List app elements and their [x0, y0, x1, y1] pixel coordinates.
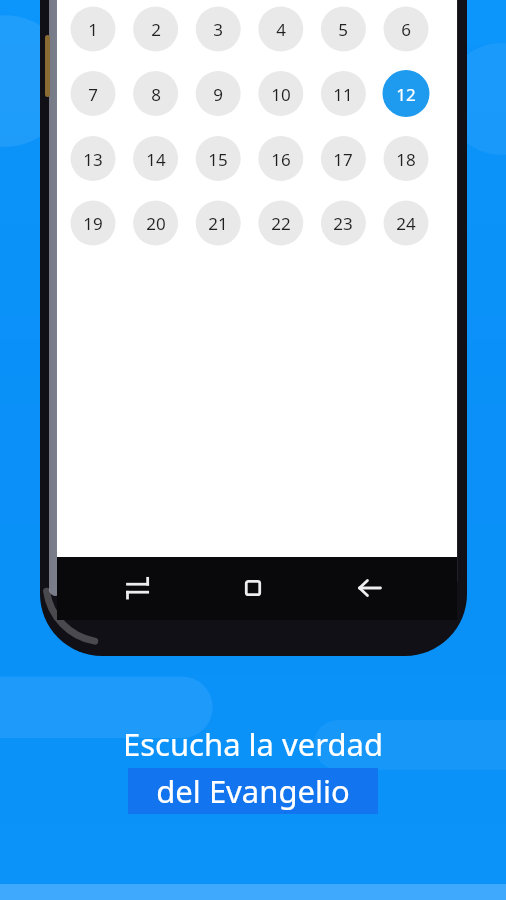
button[interactable]: 6 — [383, 6, 429, 52]
button[interactable]: 18 — [383, 136, 429, 182]
button[interactable]: 1 — [70, 6, 116, 52]
button[interactable]: Recents — [117, 567, 159, 609]
button[interactable]: Back — [349, 567, 391, 609]
button[interactable]: 21 — [195, 200, 241, 246]
button[interactable]: 7 — [70, 71, 116, 117]
staticText: 8 — [151, 83, 161, 106]
staticText: 24 — [396, 212, 416, 235]
button[interactable]: 15 — [195, 136, 241, 182]
button[interactable]: 2 — [133, 6, 179, 52]
staticText: 14 — [146, 148, 166, 171]
button[interactable]: 24 — [383, 200, 429, 246]
staticText: 9 — [213, 83, 223, 106]
staticText: del Evangelio — [156, 770, 350, 812]
button[interactable]: 17 — [320, 136, 366, 182]
button[interactable]: 4 — [258, 6, 304, 52]
staticText: 7 — [88, 83, 98, 106]
button[interactable]: 22 — [258, 200, 304, 246]
staticText: 3 — [213, 18, 223, 41]
button[interactable]: 20 — [133, 200, 179, 246]
staticText: 18 — [396, 148, 416, 171]
button[interactable]: 9 — [195, 71, 241, 117]
button[interactable]: 11 — [320, 71, 366, 117]
button[interactable]: 14 — [133, 136, 179, 182]
staticText: 11 — [333, 83, 353, 106]
staticText: 19 — [83, 212, 103, 235]
staticText: 15 — [208, 148, 228, 171]
staticText: 17 — [333, 148, 353, 171]
staticText: 22 — [271, 212, 291, 235]
button[interactable]: 10 — [258, 71, 304, 117]
staticText: 23 — [333, 212, 353, 235]
staticText: 2 — [151, 18, 161, 41]
button[interactable]: 23 — [320, 200, 366, 246]
button[interactable]: 5 — [320, 6, 366, 52]
staticText: 6 — [401, 18, 411, 41]
staticText: 16 — [271, 148, 291, 171]
button[interactable]: 16 — [258, 136, 304, 182]
staticText: 1 — [88, 18, 98, 41]
button[interactable]: 8 — [133, 71, 179, 117]
button[interactable]: 13 — [70, 136, 116, 182]
button[interactable]: 3 — [195, 6, 241, 52]
staticText: 4 — [276, 18, 286, 41]
button[interactable]: Home — [232, 567, 274, 609]
staticText: 12 — [396, 83, 416, 106]
button[interactable]: 19 — [70, 200, 116, 246]
staticText: 10 — [271, 83, 291, 106]
staticText: Escucha la verdad — [123, 723, 383, 765]
staticText: 5 — [338, 18, 348, 41]
staticText: 20 — [146, 212, 166, 235]
button[interactable]: 12 — [383, 71, 429, 117]
staticText: 21 — [208, 212, 228, 235]
staticText: 13 — [83, 148, 103, 171]
